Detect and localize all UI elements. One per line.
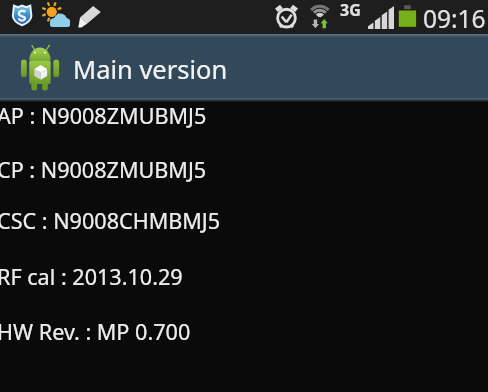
button[interactable]: CSC : N9008CHMBMJ5 [0, 206, 488, 260]
button[interactable]: CP : N9008ZMUBMJ5 [0, 155, 488, 209]
staticText: 09:16 [423, 2, 486, 35]
staticText: AP : N9008ZMUBMJ5 [0, 101, 207, 130]
button[interactable]: RF cal : 2013.10.29 [0, 262, 488, 316]
button[interactable]: Main version [0, 34, 488, 98]
staticText: Main version [73, 52, 228, 87]
staticText: 3G [340, 0, 361, 21]
button[interactable]: HW Rev. : MP 0.700 [0, 317, 488, 371]
staticText: RF cal : 2013.10.29 [0, 262, 183, 291]
staticText: CP : N9008ZMUBMJ5 [0, 155, 207, 184]
staticText: CSC : N9008CHMBMJ5 [0, 206, 221, 235]
button[interactable]: AP : N9008ZMUBMJ5 [0, 101, 488, 155]
staticText: HW Rev. : MP 0.700 [0, 317, 191, 346]
